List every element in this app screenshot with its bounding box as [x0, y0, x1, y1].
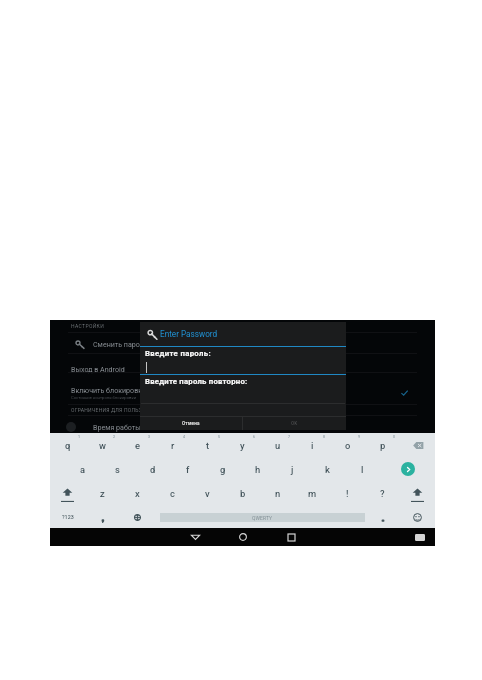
button[interactable]: Отмена — [140, 416, 242, 430]
button[interactable]: Shift — [400, 481, 435, 505]
staticText: Введите пароль: — [145, 349, 211, 358]
button[interactable]: Emoji — [400, 505, 435, 529]
staticText: Отмена — [182, 421, 200, 426]
button[interactable]: Backspace — [400, 433, 435, 457]
staticText: h — [255, 464, 261, 475]
staticText: d — [150, 464, 156, 475]
staticText: 4 — [183, 435, 186, 439]
staticText: t — [206, 440, 210, 451]
button[interactable]: k — [310, 457, 345, 481]
staticText: n — [275, 488, 281, 499]
staticText: 1 — [78, 435, 81, 439]
button[interactable]: OK — [243, 416, 346, 430]
staticText: ! — [346, 488, 349, 499]
staticText: i — [311, 440, 314, 451]
staticText: НАСТРОЙКИ — [71, 323, 105, 329]
button[interactable]: 5 — [190, 433, 225, 457]
button[interactable]: 0 — [365, 433, 400, 457]
button[interactable]: z — [85, 481, 120, 505]
staticText: Состояние контроля блокировки — [71, 395, 137, 400]
button[interactable]: Enter — [380, 457, 435, 481]
button[interactable]: b — [225, 481, 260, 505]
staticText: k — [325, 464, 330, 475]
staticText: v — [205, 488, 210, 499]
staticText: 6 — [253, 435, 256, 439]
button[interactable]: 7 — [260, 433, 295, 457]
staticText: Включить блокировку — [71, 386, 146, 394]
button[interactable]: Home — [219, 528, 267, 546]
staticText: o — [345, 440, 351, 451]
button[interactable]: c — [155, 481, 190, 505]
staticText: Введите пароль повторно: — [145, 377, 248, 386]
staticText: Выход в Android — [71, 365, 125, 373]
staticText: p — [380, 440, 386, 451]
staticText: Время работы — [93, 423, 141, 431]
staticText: w — [99, 440, 106, 451]
staticText: m — [308, 488, 317, 499]
button[interactable]: Shift — [50, 481, 85, 505]
button[interactable]: h — [240, 457, 275, 481]
staticText: c — [170, 488, 175, 499]
staticText: 3 — [148, 435, 151, 439]
button[interactable]: Hide keyboard — [405, 528, 435, 546]
staticText: f — [186, 464, 190, 475]
button[interactable]: s — [100, 457, 135, 481]
staticText: u — [275, 440, 281, 451]
staticText: OK — [291, 421, 298, 426]
staticText: g — [220, 464, 226, 475]
staticText: e — [135, 440, 141, 451]
staticText: 5 — [218, 435, 221, 439]
staticText: r — [171, 440, 175, 451]
button[interactable]: x — [120, 481, 155, 505]
button[interactable]: j — [275, 457, 310, 481]
button[interactable]: ! — [330, 481, 365, 505]
button[interactable]: Recent apps — [267, 528, 315, 546]
staticText: s — [115, 464, 120, 475]
staticText: ?123 — [62, 514, 74, 520]
button[interactable]: 4 — [155, 433, 190, 457]
staticText: Сменить пароль — [93, 340, 148, 348]
staticText: j — [291, 464, 294, 475]
button[interactable]: ?123 — [50, 505, 85, 529]
staticText: y — [240, 440, 245, 451]
button[interactable]: QWERTY — [155, 505, 365, 529]
button[interactable]: Back — [171, 528, 219, 546]
button[interactable]: 2 — [85, 433, 120, 457]
button[interactable]: v — [190, 481, 225, 505]
button[interactable]: 3 — [120, 433, 155, 457]
button[interactable]: m — [295, 481, 330, 505]
button[interactable] — [365, 505, 400, 529]
button[interactable]: 6 — [225, 433, 260, 457]
staticText: Enter Password — [160, 329, 218, 339]
staticText: 8 — [323, 435, 326, 439]
button[interactable]: d — [135, 457, 170, 481]
button[interactable]: 8 — [295, 433, 330, 457]
staticText: ОГРАНИЧЕНИЯ ДЛЯ ПОЛЬЗОВАТЕЛЯ — [71, 407, 166, 413]
staticText: z — [100, 488, 105, 499]
staticText: 9 — [358, 435, 361, 439]
button[interactable]: Change language — [120, 505, 155, 529]
staticText: a — [80, 464, 86, 475]
staticText: QWERTY — [252, 515, 273, 521]
staticText: ? — [380, 488, 385, 499]
button[interactable] — [85, 505, 120, 529]
staticText: x — [135, 488, 140, 499]
staticText: b — [240, 488, 246, 499]
button[interactable]: 9 — [330, 433, 365, 457]
staticText: 0 — [393, 435, 396, 439]
button[interactable]: 1 — [50, 433, 85, 457]
staticText: l — [361, 464, 364, 475]
button[interactable]: ? — [365, 481, 400, 505]
button[interactable]: l — [345, 457, 380, 481]
staticText: 2 — [113, 435, 116, 439]
button[interactable]: g — [205, 457, 240, 481]
staticText: q — [65, 440, 71, 451]
button[interactable]: n — [260, 481, 295, 505]
button[interactable]: f — [170, 457, 205, 481]
staticText: 7 — [288, 435, 291, 439]
button[interactable]: a — [65, 457, 100, 481]
